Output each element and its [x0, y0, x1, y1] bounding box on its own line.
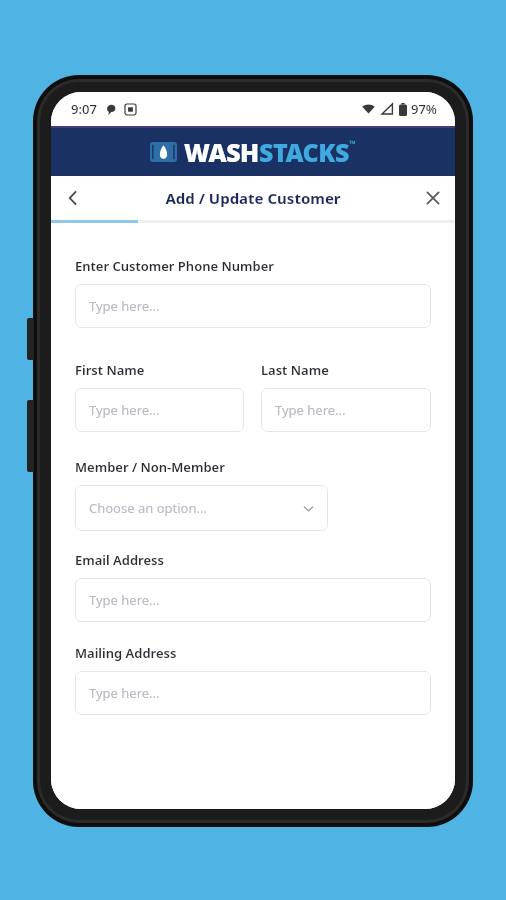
button[interactable]: Back	[51, 176, 95, 220]
button[interactable]: Type here...	[75, 578, 431, 622]
staticText: 97%	[411, 100, 437, 118]
staticText: Type here...	[89, 684, 160, 702]
button[interactable]: Type here...	[261, 388, 431, 432]
button[interactable]: Close	[411, 176, 455, 220]
staticText: Type here...	[89, 401, 160, 419]
staticText: Type here...	[275, 401, 346, 419]
staticText: WASH	[184, 135, 259, 169]
staticText: Choose an option...	[89, 499, 207, 517]
staticText: 9:07	[71, 100, 97, 118]
staticText: Enter Customer Phone Number	[75, 257, 274, 275]
staticText: STACKS	[259, 135, 349, 169]
button[interactable]: Type here...	[75, 284, 431, 328]
staticText: First Name	[75, 361, 145, 379]
button[interactable]: Choose an option...	[75, 485, 328, 531]
staticText: Email Address	[75, 551, 164, 569]
staticText: ™	[349, 137, 356, 149]
button[interactable]: Type here...	[75, 671, 431, 715]
staticText: Type here...	[89, 297, 160, 315]
staticText: Mailing Address	[75, 644, 177, 662]
staticText: Last Name	[261, 361, 329, 379]
staticText: Type here...	[89, 591, 160, 609]
staticText: Member / Non-Member	[75, 458, 225, 476]
staticText: Add / Update Customer	[165, 188, 341, 208]
button[interactable]: Type here...	[75, 388, 244, 432]
